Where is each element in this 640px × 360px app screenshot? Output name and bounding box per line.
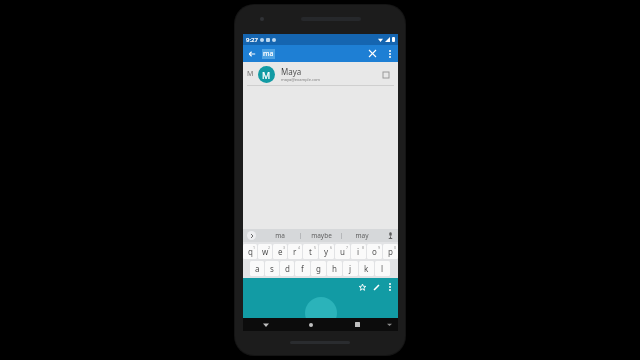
button[interactable]: a: [250, 261, 264, 276]
staticText: r: [293, 246, 297, 257]
button[interactable]: h: [327, 261, 342, 276]
button[interactable]: Edit: [369, 280, 383, 294]
staticText: ma: [263, 49, 274, 59]
button[interactable]: ma: [259, 229, 300, 242]
staticText: t: [309, 246, 312, 257]
button[interactable]: More options: [381, 45, 398, 62]
button[interactable]: l: [375, 261, 390, 276]
staticText: f: [301, 263, 304, 274]
staticText: y: [324, 246, 329, 257]
staticText: d: [285, 263, 290, 274]
staticText: may: [355, 231, 369, 240]
button[interactable]: More options: [383, 280, 397, 294]
staticText: o: [372, 246, 377, 257]
button[interactable]: Home: [288, 318, 334, 331]
button[interactable]: M: [243, 62, 398, 86]
staticText: ma: [275, 231, 285, 240]
staticText: 9:27: [246, 36, 258, 44]
button[interactable]: may: [342, 229, 382, 242]
staticText: s: [270, 263, 274, 274]
button[interactable]: q: [243, 244, 257, 259]
staticText: 0: [394, 245, 397, 250]
staticText: 6: [330, 245, 333, 250]
staticText: k: [364, 263, 369, 274]
button[interactable]: Expand suggestions: [243, 229, 259, 242]
button[interactable]: Hide keyboard: [380, 318, 398, 331]
staticText: 5: [314, 245, 317, 250]
button[interactable]: o: [367, 244, 382, 259]
button[interactable]: maybe: [301, 229, 341, 242]
staticText: u: [340, 246, 345, 257]
staticText: i: [357, 246, 360, 257]
staticText: a: [255, 263, 260, 274]
button[interactable]: r: [288, 244, 302, 259]
staticText: l: [381, 263, 384, 274]
button[interactable]: Back: [243, 318, 288, 331]
staticText: M: [247, 69, 254, 79]
button[interactable]: Voice input: [382, 229, 398, 242]
button[interactable]: f: [295, 261, 310, 276]
staticText: h: [332, 263, 337, 274]
button[interactable]: Favorite: [355, 280, 369, 294]
staticText: Maya: [281, 66, 302, 77]
button[interactable]: j: [343, 261, 358, 276]
button[interactable]: Clear search: [364, 45, 381, 62]
button[interactable]: Select contact: [380, 69, 391, 80]
staticText: 8: [362, 245, 365, 250]
staticText: 7: [346, 245, 349, 250]
staticText: M: [262, 69, 271, 81]
staticText: g: [316, 263, 321, 274]
staticText: 3: [283, 245, 286, 250]
staticText: q: [248, 246, 253, 257]
staticText: e: [278, 246, 283, 257]
button[interactable]: e: [273, 244, 287, 259]
button[interactable]: Recent apps: [334, 318, 380, 331]
button[interactable]: t: [303, 244, 318, 259]
button[interactable]: s: [265, 261, 279, 276]
button[interactable]: i: [351, 244, 366, 259]
staticText: maya@example.com: [281, 77, 321, 82]
staticText: 1: [253, 245, 256, 250]
button[interactable]: w: [258, 244, 272, 259]
staticText: 9: [378, 245, 381, 250]
staticText: 2: [268, 245, 271, 250]
staticText: p: [388, 246, 393, 257]
staticText: maybe: [311, 231, 332, 240]
button[interactable]: d: [280, 261, 294, 276]
button[interactable]: y: [319, 244, 334, 259]
button[interactable]: u: [335, 244, 350, 259]
staticText: w: [262, 246, 269, 257]
button[interactable]: k: [359, 261, 374, 276]
button[interactable]: p: [383, 244, 398, 259]
button[interactable]: g: [311, 261, 326, 276]
staticText: 4: [298, 245, 301, 250]
staticText: j: [349, 263, 352, 274]
button[interactable]: Back: [243, 45, 260, 62]
